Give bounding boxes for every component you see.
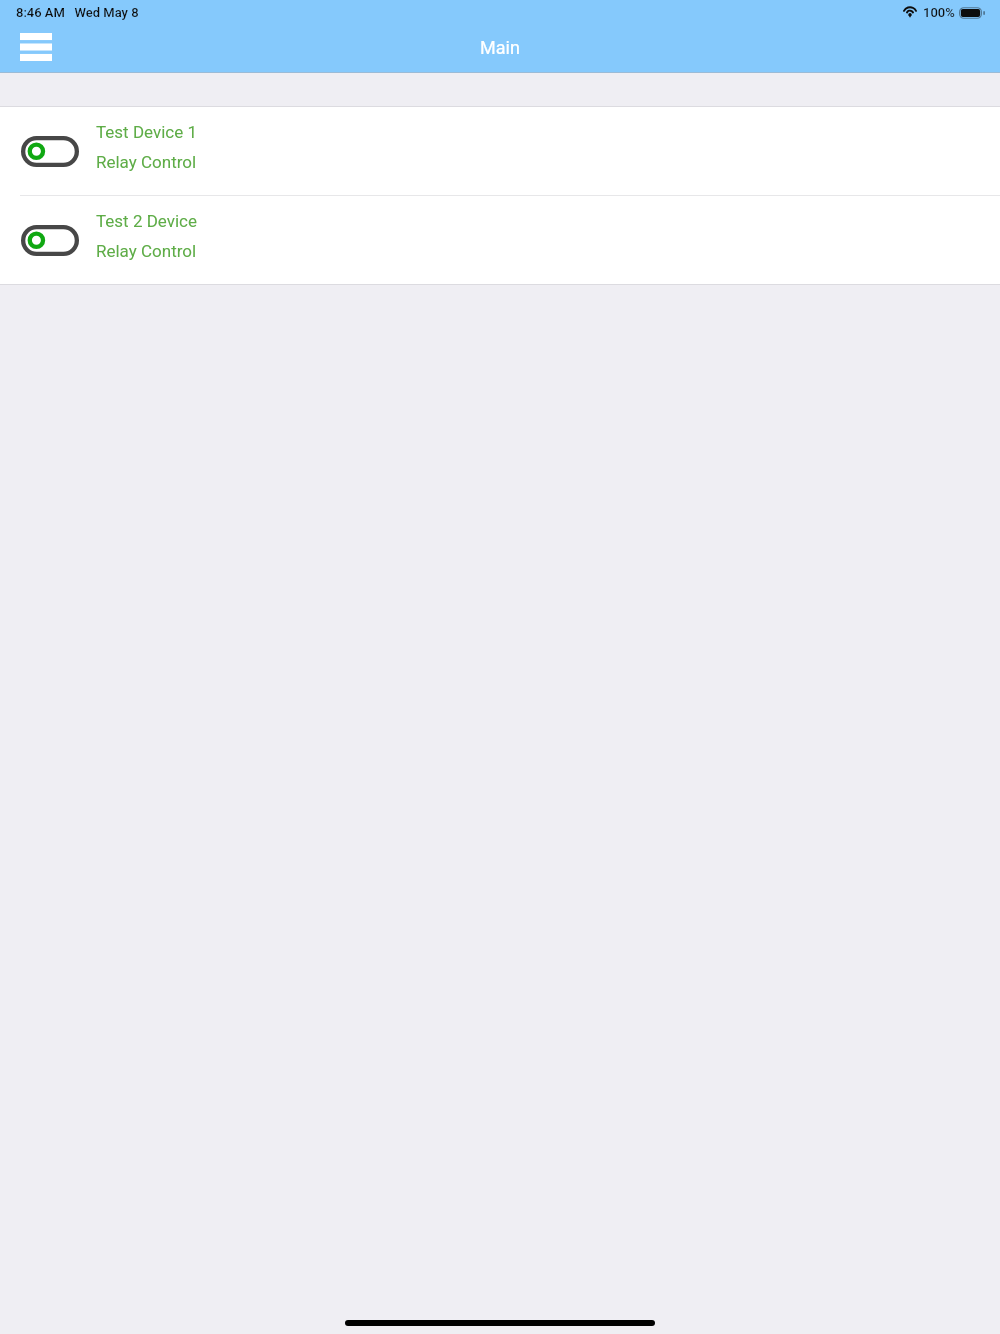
button[interactable]: Relay on/off toggle — [21, 136, 79, 167]
button[interactable]: Open navigation menu — [11, 23, 60, 70]
staticText: 8:46 AM Wed May 8 — [16, 5, 139, 20]
staticText: 100% — [923, 5, 955, 20]
staticText: Main — [480, 37, 520, 58]
button[interactable]: Relay on/off toggle — [0, 196, 1000, 284]
button[interactable]: Relay on/off toggle — [0, 107, 1000, 195]
staticText: Relay Control — [96, 241, 197, 261]
staticText: Relay Control — [96, 152, 197, 172]
staticText: Test 2 Device — [96, 211, 198, 231]
staticText: Test Device 1 — [96, 122, 198, 142]
button[interactable]: Relay on/off toggle — [21, 225, 79, 256]
